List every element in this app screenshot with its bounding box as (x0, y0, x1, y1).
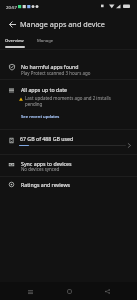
button[interactable]: Overview (0, 34, 29, 47)
button[interactable]: See recent updates (19, 112, 62, 122)
staticText: See recent updates (21, 114, 60, 120)
staticText: No devices synced (21, 166, 60, 172)
staticText: Sync apps to devices (21, 160, 72, 167)
staticText: Manage apps and device (20, 19, 105, 29)
staticText: 20:57 (6, 4, 17, 10)
staticText: Ratings and reviews (21, 181, 71, 188)
button[interactable]: Recents (99, 283, 115, 299)
staticText: Play Protect scanned 3 hours ago (21, 70, 91, 76)
button[interactable]: Ratings and reviews (0, 177, 137, 195)
button[interactable]: Manage (31, 34, 60, 47)
button[interactable]: Back (22, 283, 38, 299)
staticText: Last updated moments ago and 2 installs … (25, 95, 111, 107)
button[interactable]: Home (61, 283, 77, 299)
button[interactable]: All apps up to date (0, 80, 137, 122)
staticText: All apps up to date (21, 86, 68, 93)
button[interactable]: No harmful apps found (0, 56, 137, 78)
button[interactable]: Back (4, 16, 20, 32)
staticText: Manage (37, 38, 54, 44)
button[interactable]: Sync apps to devices (0, 155, 137, 176)
staticText: No harmful apps found (21, 63, 79, 70)
staticText: 67 GB of 488 GB used (20, 135, 74, 142)
staticText: Overview (5, 38, 24, 44)
button[interactable]: 67 GB of 488 GB used (0, 130, 137, 154)
